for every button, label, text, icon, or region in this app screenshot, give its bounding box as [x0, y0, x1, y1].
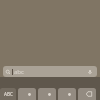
button[interactable]: Smileys and people: [38, 88, 56, 100]
button[interactable]: abc: [3, 66, 97, 77]
button[interactable]: Recent emoji: [18, 88, 36, 100]
button[interactable]: Animals and nature: [58, 88, 76, 100]
button[interactable]: Backspace: [78, 88, 96, 100]
button[interactable]: Voice search: [86, 68, 94, 76]
staticText: ABC: [4, 91, 13, 97]
button[interactable]: Letters keyboard: [0, 88, 16, 100]
staticText: abc: [14, 68, 24, 76]
